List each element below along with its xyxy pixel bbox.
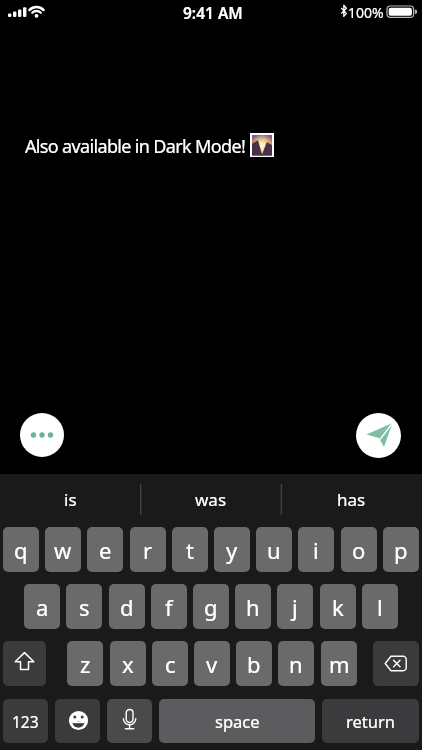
- staticText: x: [122, 649, 134, 679]
- staticText: Also available in Dark Mode!: [25, 134, 246, 159]
- staticText: q: [14, 535, 28, 565]
- staticText: l: [377, 592, 383, 622]
- button[interactable]: v: [194, 641, 230, 686]
- staticText: f: [165, 592, 173, 622]
- button[interactable]: [55, 699, 100, 743]
- staticText: c: [165, 649, 176, 679]
- button[interactable]: [107, 699, 152, 743]
- button[interactable]: u: [256, 527, 292, 572]
- staticText: t: [186, 535, 194, 565]
- button[interactable]: t: [172, 527, 208, 572]
- staticText: was: [195, 488, 227, 511]
- button[interactable]: f: [151, 584, 187, 629]
- staticText: h: [246, 592, 260, 622]
- staticText: s: [79, 592, 90, 622]
- staticText: m: [329, 649, 350, 679]
- staticText: p: [394, 535, 408, 565]
- button[interactable]: q: [3, 527, 39, 572]
- staticText: w: [54, 535, 72, 565]
- button[interactable]: i: [298, 527, 334, 572]
- staticText: r: [143, 535, 153, 565]
- button[interactable]: z: [67, 641, 103, 686]
- staticText: return: [346, 710, 395, 732]
- staticText: d: [120, 592, 134, 622]
- button[interactable]: has: [281, 483, 421, 516]
- button[interactable]: a: [24, 584, 60, 629]
- button[interactable]: r: [130, 527, 166, 572]
- button[interactable]: is: [0, 483, 140, 516]
- button[interactable]: s: [66, 584, 102, 629]
- staticText: is: [64, 488, 77, 511]
- staticText: y: [226, 535, 238, 565]
- button[interactable]: space: [159, 699, 315, 743]
- button[interactable]: return: [322, 699, 419, 743]
- button[interactable]: p: [383, 527, 419, 572]
- staticText: has: [337, 488, 366, 511]
- staticText: k: [332, 592, 344, 622]
- button[interactable]: h: [235, 584, 271, 629]
- button[interactable]: g: [193, 584, 229, 629]
- staticText: a: [36, 592, 49, 622]
- button[interactable]: d: [109, 584, 145, 629]
- button[interactable]: w: [45, 527, 81, 572]
- button[interactable]: was: [141, 483, 281, 516]
- staticText: i: [313, 535, 319, 565]
- button[interactable]: c: [152, 641, 188, 686]
- staticText: n: [289, 649, 303, 679]
- staticText: z: [80, 649, 91, 679]
- button[interactable]: o: [341, 527, 377, 572]
- staticText: e: [99, 535, 112, 565]
- button[interactable]: k: [320, 584, 356, 629]
- button[interactable]: [3, 641, 46, 686]
- button[interactable]: [20, 413, 64, 457]
- staticText: 123: [12, 711, 39, 732]
- staticText: v: [206, 649, 218, 679]
- staticText: 100%: [348, 3, 384, 22]
- button[interactable]: [373, 641, 419, 686]
- button[interactable]: j: [277, 584, 313, 629]
- staticText: u: [267, 535, 281, 565]
- button[interactable]: y: [214, 527, 250, 572]
- staticText: 9:41 AM: [183, 2, 243, 23]
- staticText: j: [292, 592, 298, 622]
- staticText: o: [352, 535, 366, 565]
- button[interactable]: [356, 413, 401, 458]
- button[interactable]: m: [321, 641, 357, 686]
- staticText: space: [215, 710, 260, 732]
- button[interactable]: e: [87, 527, 123, 572]
- button[interactable]: 123: [3, 699, 48, 743]
- button[interactable]: b: [236, 641, 272, 686]
- staticText: g: [204, 592, 218, 622]
- button[interactable]: x: [110, 641, 146, 686]
- staticText: b: [247, 649, 261, 679]
- button[interactable]: n: [278, 641, 314, 686]
- button[interactable]: l: [362, 584, 398, 629]
